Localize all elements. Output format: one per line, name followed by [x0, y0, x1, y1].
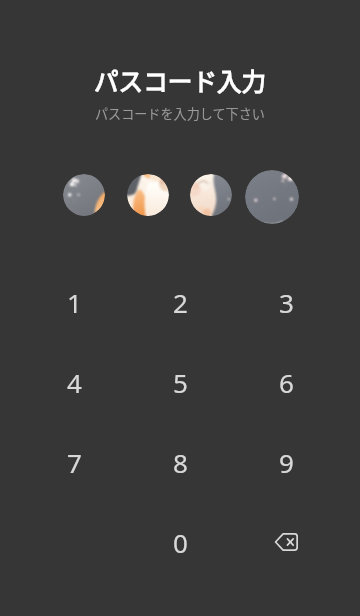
staticText: 8: [173, 445, 188, 480]
button[interactable]: 5: [132, 342, 228, 422]
button[interactable]: 1: [26, 262, 122, 342]
staticText: 7: [67, 445, 82, 480]
staticText: 5: [173, 365, 188, 400]
staticText: パスコードを入力して下さい: [95, 104, 265, 123]
button[interactable]: 7: [26, 422, 122, 502]
button[interactable]: 3: [238, 262, 334, 342]
staticText: パスコード入力: [94, 62, 267, 94]
button[interactable]: Backspace: [238, 502, 334, 582]
staticText: 0: [173, 525, 188, 560]
staticText: 9: [279, 445, 294, 480]
button[interactable]: 4: [26, 342, 122, 422]
button[interactable]: 9: [238, 422, 334, 502]
staticText: 3: [279, 285, 294, 320]
button[interactable]: 0: [132, 502, 228, 582]
button[interactable]: 6: [238, 342, 334, 422]
button[interactable]: 2: [132, 262, 228, 342]
staticText: 1: [67, 285, 82, 320]
button[interactable]: 8: [132, 422, 228, 502]
staticText: 2: [173, 285, 188, 320]
staticText: 4: [67, 365, 82, 400]
staticText: 6: [279, 365, 294, 400]
